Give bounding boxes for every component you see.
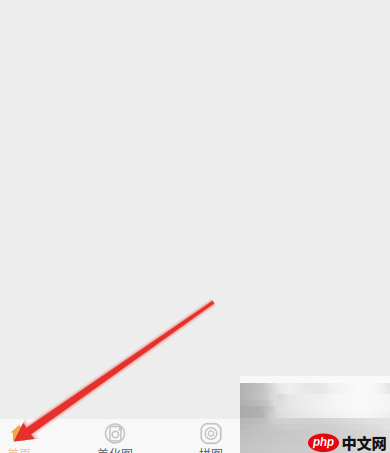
staticText: 中文网	[341, 431, 386, 453]
staticText: 拼图	[199, 445, 223, 453]
button[interactable]: 美化图	[67, 419, 163, 453]
staticText: 美化图	[97, 445, 133, 453]
staticText: 首页	[7, 445, 31, 453]
staticText: 我的	[295, 445, 319, 453]
staticText: php	[313, 435, 334, 449]
button[interactable]: 首页	[0, 419, 67, 453]
button[interactable]: 拼图	[163, 419, 259, 453]
button[interactable]: 我的	[259, 419, 355, 453]
